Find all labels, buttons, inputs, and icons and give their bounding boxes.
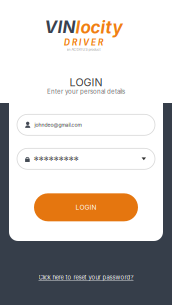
staticText: locity	[75, 17, 122, 37]
staticText: D R I V E R	[64, 37, 103, 47]
staticText: johndeo@gmail.com	[34, 122, 81, 128]
staticText: Click here to reset your password?	[38, 274, 133, 281]
staticText: ✻✻✻✻✻✻✻✻✻	[34, 155, 79, 162]
button[interactable]: LOGIN	[34, 193, 138, 221]
staticText: LOGIN	[75, 203, 96, 211]
staticText: LOGIN	[69, 76, 102, 89]
staticText: VIN	[44, 17, 75, 37]
staticText: Enter your personal details	[47, 88, 125, 95]
staticText: an ACERTUS product	[66, 47, 100, 52]
button[interactable]: Click here to reset your password?	[38, 274, 133, 281]
